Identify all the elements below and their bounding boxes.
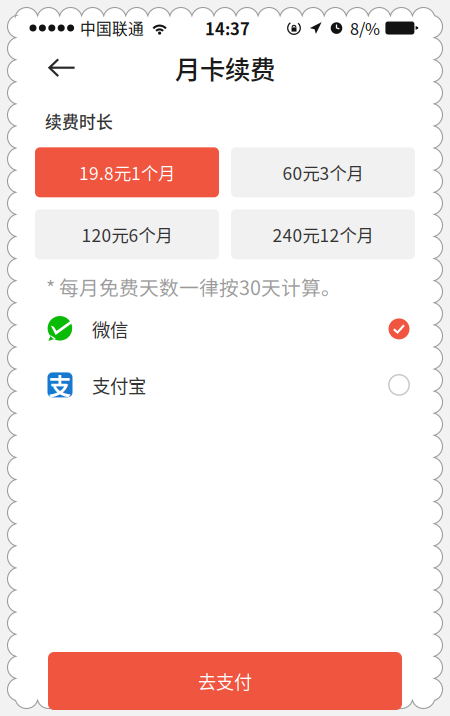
staticText: 月卡续费 (175, 50, 275, 86)
button[interactable]: Back (40, 49, 84, 87)
staticText: * 每月免费天数一律按30天计算。 (46, 272, 341, 301)
button[interactable]: 去支付 (48, 652, 402, 710)
staticText: 60元3个月 (282, 160, 363, 185)
button[interactable]: 120元6个月 (35, 209, 219, 259)
staticText: 14:37 (205, 16, 250, 40)
staticText: 中国联通 (80, 17, 144, 39)
button[interactable]: 微信 (47, 301, 410, 357)
staticText: 8/% (350, 16, 380, 40)
staticText: 去支付 (198, 668, 252, 694)
staticText: 支 (48, 368, 71, 401)
staticText: 续费时长 (45, 109, 113, 133)
staticText: 微信 (92, 316, 128, 342)
button[interactable]: 支 (47, 357, 410, 413)
staticText: 支付宝 (92, 372, 146, 398)
button[interactable]: 240元12个月 (231, 209, 415, 259)
staticText: 19.8元1个月 (79, 160, 175, 185)
button[interactable]: 19.8元1个月 (35, 147, 219, 197)
staticText: 120元6个月 (81, 222, 172, 247)
button[interactable]: 60元3个月 (231, 147, 415, 197)
staticText: 240元12个月 (272, 222, 373, 247)
